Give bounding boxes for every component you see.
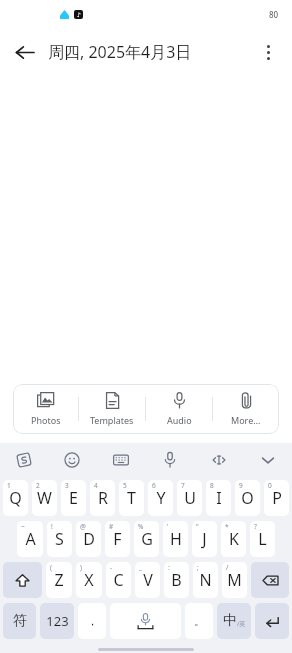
button[interactable]: Photos (13, 384, 78, 434)
staticText: 7 (181, 481, 185, 490)
button[interactable]: L (250, 521, 275, 557)
staticText: : (168, 563, 170, 572)
staticText: * (225, 522, 229, 531)
staticText: X (84, 569, 94, 591)
button[interactable]: Q (3, 480, 28, 516)
staticText: ? (254, 522, 257, 531)
staticText: H (170, 528, 182, 550)
staticText: W (37, 487, 52, 509)
button[interactable]: Z (46, 562, 72, 598)
staticText: 6 (152, 481, 156, 490)
staticText: E (69, 487, 78, 509)
staticText: M (227, 569, 242, 591)
button[interactable]: Y (148, 480, 173, 516)
button[interactable]: Sogou input (0, 443, 48, 477)
staticText: K (229, 528, 239, 550)
button[interactable]: 123 (40, 603, 74, 639)
staticText: 0 (268, 481, 272, 490)
staticText: Z (54, 569, 64, 591)
staticText: Q (9, 487, 22, 509)
button[interactable]: 。 (185, 603, 213, 639)
staticText: 周四, 2025年4月3日 (48, 41, 244, 63)
staticText: ♪ (77, 11, 81, 18)
staticText: Templates (90, 414, 134, 426)
button[interactable]: ， (78, 603, 106, 639)
staticText: @ (80, 522, 86, 531)
button[interactable]: Shift (3, 562, 42, 598)
button[interactable]: More… (213, 384, 279, 434)
staticText: Y (156, 487, 166, 509)
staticText: 1 (7, 481, 11, 490)
staticText: Audio (167, 414, 192, 426)
staticText: F (113, 528, 122, 550)
staticText: % (138, 522, 144, 531)
staticText: ! (51, 522, 53, 531)
button[interactable]: Enter (255, 603, 289, 639)
button[interactable]: E (61, 480, 86, 516)
button[interactable]: P (264, 480, 289, 516)
button[interactable]: Hide keyboard (243, 443, 292, 477)
button[interactable]: N (193, 562, 218, 598)
button[interactable]: Back (0, 28, 48, 76)
button[interactable]: Keyboard layout (96, 443, 145, 477)
staticText: I (216, 487, 222, 509)
staticText: 符 (13, 612, 27, 630)
staticText: 8 (210, 481, 214, 490)
staticText: 3 (65, 481, 69, 490)
button[interactable]: I (206, 480, 231, 516)
staticText: R (98, 487, 108, 509)
button[interactable]: Switch language (217, 603, 251, 639)
staticText: - (110, 563, 113, 572)
button[interactable]: S (47, 521, 72, 557)
button[interactable]: K (221, 521, 246, 557)
staticText: 。 (194, 614, 205, 628)
button[interactable]: M (222, 562, 247, 598)
button[interactable]: W (32, 480, 57, 516)
button[interactable]: G (134, 521, 159, 557)
button[interactable]: H (163, 521, 188, 557)
staticText: 9 (239, 481, 243, 490)
staticText: U (184, 487, 196, 509)
staticText: J (202, 528, 207, 550)
staticText: ' (167, 522, 169, 531)
button[interactable]: Move cursor (194, 443, 243, 477)
staticText: ( (50, 563, 52, 572)
button[interactable]: Space (110, 603, 181, 639)
button[interactable]: D (76, 521, 101, 557)
button[interactable]: V (135, 562, 160, 598)
button[interactable]: 符 (3, 603, 36, 639)
staticText: " (196, 522, 199, 531)
staticText: 80 (269, 9, 279, 20)
button[interactable]: A (17, 521, 43, 557)
staticText: 123 (46, 612, 69, 630)
button[interactable]: U (177, 480, 202, 516)
staticText: ; (197, 563, 199, 572)
staticText: P (272, 487, 282, 509)
staticText: N (199, 569, 212, 591)
staticText: 4 (94, 481, 98, 490)
button[interactable]: B (164, 562, 189, 598)
button[interactable]: Voice input (145, 443, 194, 477)
button[interactable]: X (76, 562, 102, 598)
staticText: Photos (31, 414, 61, 426)
button[interactable]: More options (244, 28, 292, 76)
button[interactable]: T (119, 480, 144, 516)
staticText: _ (139, 563, 142, 572)
button[interactable]: C (106, 562, 131, 598)
button[interactable]: F (105, 521, 130, 557)
button[interactable]: Templates (79, 384, 145, 434)
staticText: 2 (36, 481, 40, 490)
staticText: O (241, 487, 254, 509)
button[interactable]: R (90, 480, 115, 516)
button[interactable]: J (192, 521, 217, 557)
button[interactable]: Audio (146, 384, 212, 434)
staticText: More… (231, 414, 261, 426)
staticText: D (83, 528, 95, 550)
staticText: A (25, 528, 36, 550)
button[interactable]: O (235, 480, 260, 516)
staticText: /英 (237, 620, 246, 628)
button[interactable]: Backspace (251, 562, 289, 598)
staticText: ) (80, 563, 82, 572)
button[interactable]: Emoji (48, 443, 96, 477)
staticText: / (226, 563, 229, 572)
